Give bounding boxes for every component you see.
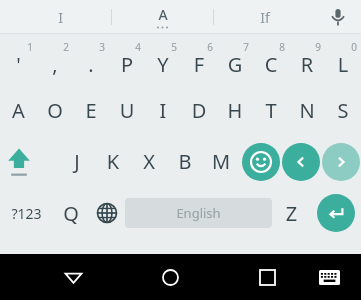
staticText: 3	[92, 40, 112, 54]
button[interactable]: Home	[147, 254, 193, 300]
button[interactable]: Y	[145, 35, 181, 85]
button[interactable]: Q	[53, 188, 89, 238]
staticText: .	[73, 51, 109, 78]
staticText: Q	[53, 200, 89, 227]
staticText: 5	[164, 40, 184, 54]
button[interactable]: G	[217, 35, 253, 85]
button[interactable]: Change language	[89, 188, 125, 238]
staticText: K	[95, 148, 131, 175]
button[interactable]: S	[325, 85, 361, 135]
staticText: 6	[200, 40, 220, 54]
button[interactable]: Emoji	[241, 135, 281, 188]
staticText: N	[289, 97, 325, 124]
staticText: E	[73, 97, 109, 124]
button[interactable]: ,	[37, 35, 73, 85]
button[interactable]: C	[253, 35, 289, 85]
button[interactable]: D	[181, 85, 217, 135]
staticText: 1	[20, 40, 40, 54]
staticText: H	[217, 97, 253, 124]
staticText: A	[0, 97, 37, 124]
staticText: O	[37, 97, 73, 124]
staticText: ,	[37, 51, 73, 78]
button[interactable]: Next	[321, 135, 361, 188]
button[interactable]: Z	[272, 188, 311, 238]
button[interactable]: K	[95, 135, 131, 188]
button[interactable]: J	[59, 135, 95, 188]
button[interactable]: N	[289, 85, 325, 135]
button[interactable]: T	[253, 85, 289, 135]
staticText: 0	[344, 40, 361, 54]
staticText: S	[325, 97, 361, 124]
staticText: 9	[308, 40, 328, 54]
staticText: B	[167, 148, 203, 175]
button[interactable]: Recents	[244, 254, 290, 300]
button[interactable]: M	[203, 135, 239, 188]
staticText: 7	[236, 40, 256, 54]
staticText: '	[0, 51, 37, 78]
button[interactable]: A	[0, 85, 37, 135]
button[interactable]: P	[109, 35, 145, 85]
staticText: C	[253, 51, 289, 78]
button[interactable]: Enter	[311, 188, 361, 238]
button[interactable]: F	[181, 35, 217, 85]
button[interactable]: Switch keyboard	[306, 254, 352, 300]
button[interactable]: Previous	[281, 135, 321, 188]
button[interactable]: If	[214, 0, 315, 34]
staticText: I	[58, 8, 63, 27]
button[interactable]: A	[112, 0, 213, 34]
staticText: J	[59, 148, 95, 175]
button[interactable]: .	[73, 35, 109, 85]
button[interactable]: Shift	[0, 135, 37, 188]
button[interactable]: I	[145, 85, 181, 135]
staticText: F	[181, 51, 217, 78]
button[interactable]: U	[109, 85, 145, 135]
staticText: P	[109, 51, 145, 78]
staticText: 8	[272, 40, 292, 54]
staticText: 2	[56, 40, 76, 54]
staticText: L	[325, 51, 361, 78]
button[interactable]: ?123	[0, 188, 53, 238]
staticText: If	[260, 8, 270, 27]
button[interactable]: Voice input	[315, 0, 361, 34]
staticText: A	[158, 5, 168, 24]
staticText: 4	[128, 40, 148, 54]
button[interactable]: '	[0, 35, 37, 85]
button[interactable]: Hide keyboard	[50, 254, 96, 300]
staticText: U	[109, 97, 145, 124]
staticText: G	[217, 51, 253, 78]
staticText: English	[125, 204, 272, 222]
staticText: D	[181, 97, 217, 124]
button[interactable]: B	[167, 135, 203, 188]
button[interactable]: E	[73, 85, 109, 135]
button[interactable]: L	[325, 35, 361, 85]
staticText: T	[253, 97, 289, 124]
staticText: R	[289, 51, 325, 78]
staticText: ?123	[0, 204, 53, 223]
staticText: Z	[272, 200, 311, 227]
button[interactable]: I	[10, 0, 111, 34]
button[interactable]: R	[289, 35, 325, 85]
button[interactable]: O	[37, 85, 73, 135]
staticText: X	[131, 148, 167, 175]
button[interactable]: X	[131, 135, 167, 188]
button[interactable]: H	[217, 85, 253, 135]
button[interactable]: English	[125, 198, 272, 228]
staticText: M	[203, 148, 239, 175]
staticText: Y	[145, 51, 181, 78]
staticText: I	[145, 97, 181, 124]
